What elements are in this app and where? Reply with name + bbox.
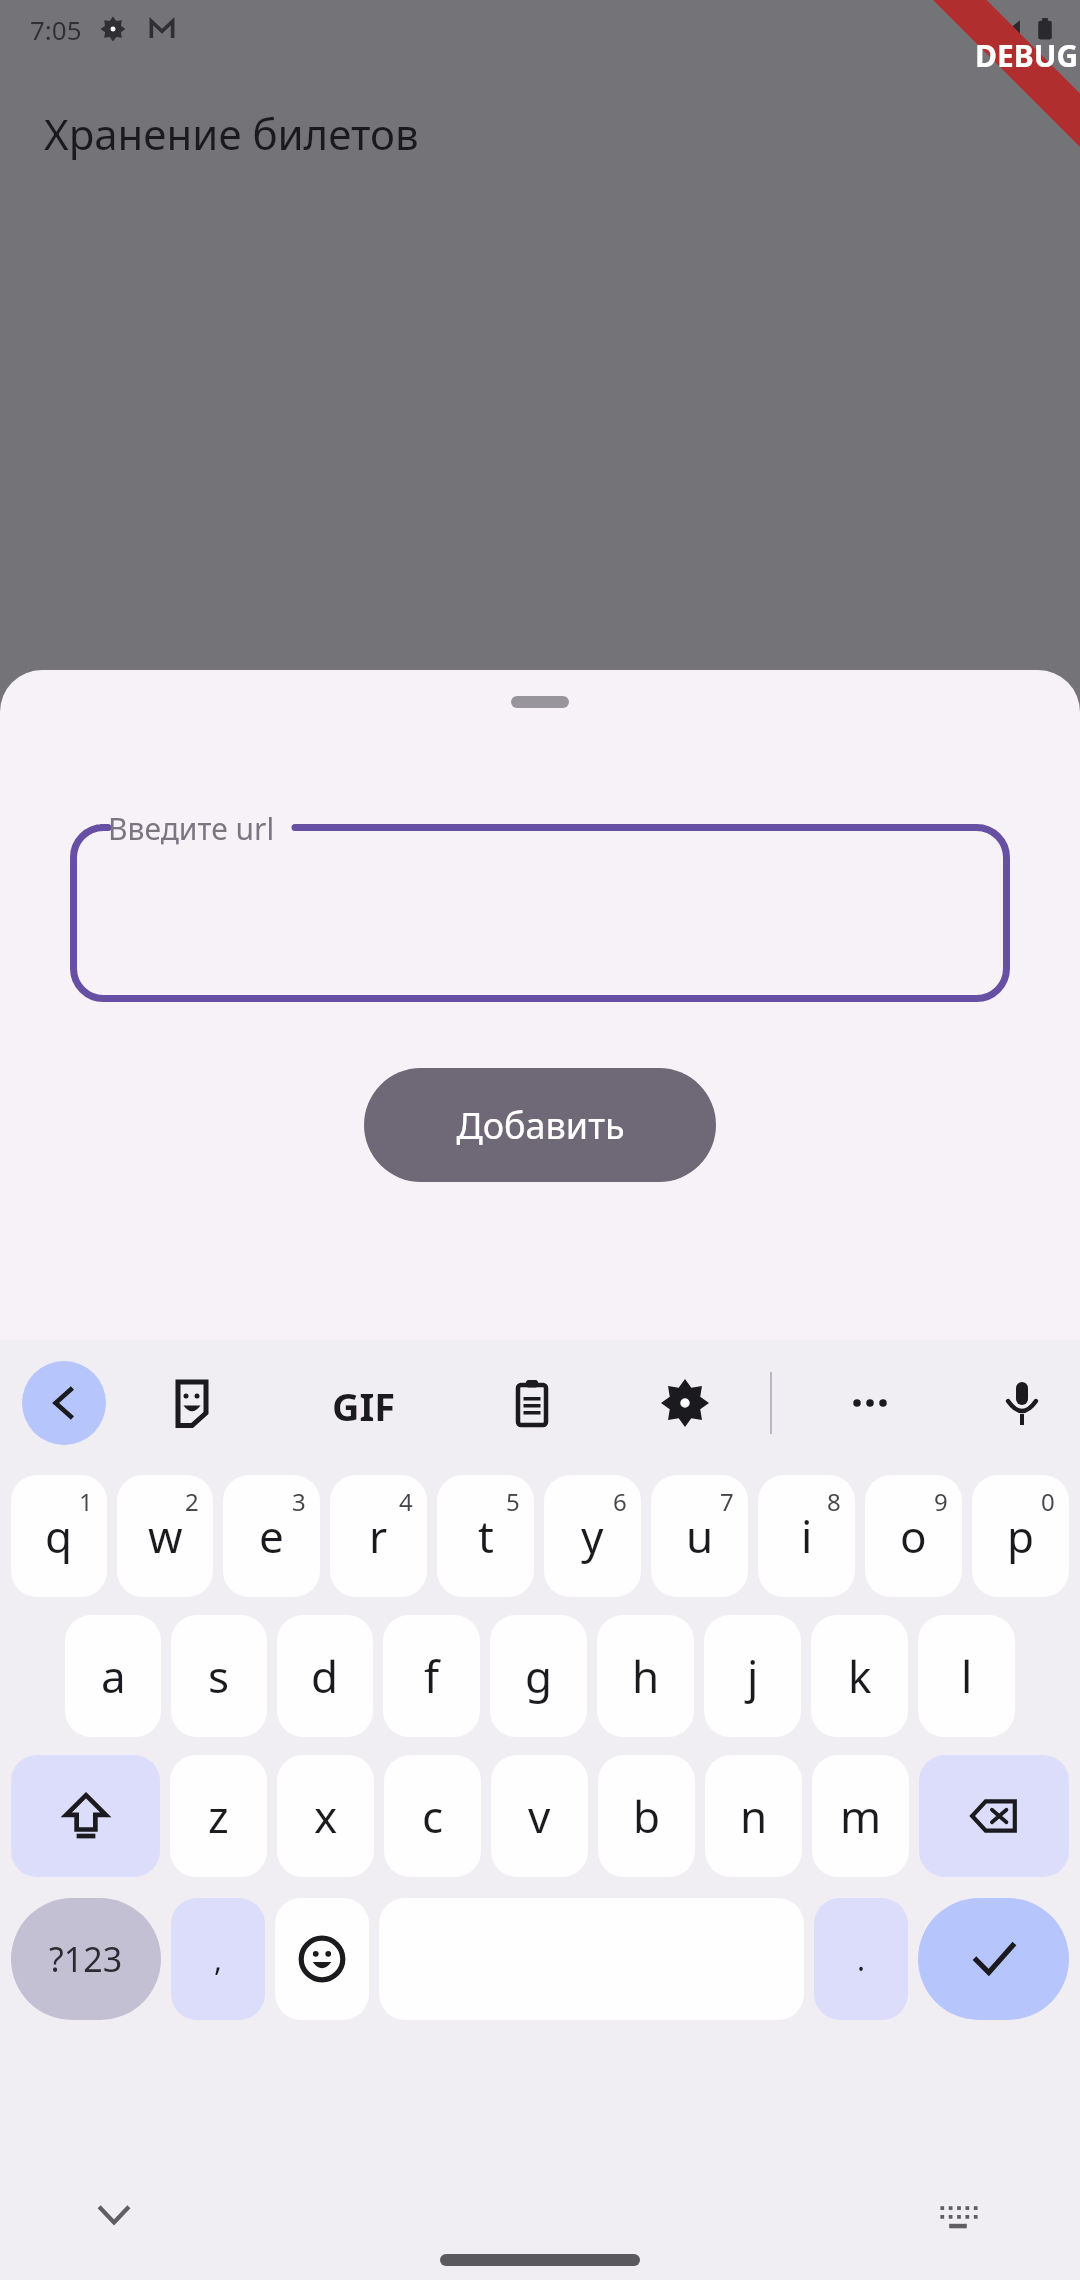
staticText: 0 <box>1041 1485 1055 1518</box>
button[interactable]: Emoji <box>275 1898 369 2020</box>
button[interactable]: Clipboard <box>490 1361 574 1445</box>
staticText: 4 <box>399 1485 413 1518</box>
staticText: e <box>259 1506 284 1566</box>
button[interactable]: t <box>437 1475 534 1597</box>
button[interactable]: Backspace <box>919 1755 1069 1877</box>
button[interactable]: l <box>918 1615 1015 1737</box>
staticText: m <box>840 1786 882 1846</box>
button[interactable]: a <box>65 1615 161 1737</box>
staticText: GIF <box>332 1380 396 1432</box>
button[interactable]: Hide keyboard <box>86 2187 142 2243</box>
button[interactable]: ?123 <box>11 1898 161 2020</box>
staticText: 5 <box>506 1485 520 1518</box>
staticText: g <box>525 1646 553 1706</box>
button[interactable]: Settings <box>643 1361 727 1445</box>
staticText: j <box>747 1646 759 1706</box>
button[interactable]: Shift <box>11 1755 160 1877</box>
button[interactable]: , <box>171 1898 265 2020</box>
button[interactable]: . <box>814 1898 908 2020</box>
staticText: 3 <box>292 1485 306 1518</box>
staticText: Введите url <box>108 808 275 849</box>
button[interactable]: u <box>651 1475 748 1597</box>
staticText: 7:05 <box>30 12 82 47</box>
staticText: 1 <box>79 1485 93 1518</box>
button[interactable]: k <box>811 1615 908 1737</box>
staticText: Добавить <box>456 1101 625 1150</box>
button[interactable]: f <box>383 1615 480 1737</box>
button[interactable]: p <box>972 1475 1069 1597</box>
button[interactable]: x <box>277 1755 374 1877</box>
staticText: n <box>740 1786 768 1846</box>
button[interactable]: Back <box>22 1361 106 1445</box>
button[interactable]: Switch keyboard <box>930 2187 986 2243</box>
button[interactable]: Enter <box>918 1898 1069 2020</box>
staticText: 8 <box>827 1485 841 1518</box>
button[interactable]: y <box>544 1475 641 1597</box>
staticText: h <box>632 1646 660 1706</box>
button[interactable]: h <box>597 1615 694 1737</box>
button[interactable]: GIF <box>332 1380 396 1432</box>
staticText: 6 <box>613 1485 627 1518</box>
staticText: t <box>478 1506 494 1566</box>
button[interactable]: Добавить <box>364 1068 716 1182</box>
staticText: Хранение билетов <box>44 105 419 162</box>
staticText: i <box>801 1506 813 1566</box>
button[interactable]: v <box>491 1755 588 1877</box>
staticText: 7 <box>720 1485 734 1518</box>
staticText: w <box>148 1506 183 1566</box>
staticText: o <box>900 1506 927 1566</box>
staticText: z <box>208 1786 229 1846</box>
staticText: u <box>686 1506 714 1566</box>
button[interactable]: b <box>598 1755 695 1877</box>
button[interactable]: m <box>812 1755 909 1877</box>
staticText: v <box>528 1786 551 1846</box>
button[interactable]: Stickers <box>150 1361 234 1445</box>
staticText: 2 <box>185 1485 199 1518</box>
staticText: . <box>857 1939 866 1980</box>
staticText: x <box>314 1786 338 1846</box>
button[interactable]: n <box>705 1755 802 1877</box>
button[interactable]: d <box>277 1615 373 1737</box>
staticText: y <box>581 1506 604 1566</box>
button[interactable]: j <box>704 1615 801 1737</box>
button[interactable]: z <box>170 1755 267 1877</box>
button[interactable]: o <box>865 1475 962 1597</box>
staticText: b <box>633 1786 661 1846</box>
button[interactable]: e <box>223 1475 320 1597</box>
staticText: f <box>424 1646 440 1706</box>
button[interactable]: s <box>171 1615 267 1737</box>
button[interactable]: More options <box>828 1361 912 1445</box>
staticText: l <box>961 1646 973 1706</box>
staticText: c <box>422 1786 444 1846</box>
staticText: r <box>369 1506 388 1566</box>
staticText: k <box>848 1646 872 1706</box>
staticText: d <box>311 1646 339 1706</box>
staticText: ?123 <box>49 1936 123 1982</box>
staticText: , <box>214 1939 223 1980</box>
staticText: s <box>208 1646 230 1706</box>
button[interactable]: i <box>758 1475 855 1597</box>
staticText: q <box>45 1506 73 1566</box>
staticText: p <box>1007 1506 1035 1566</box>
button[interactable]: c <box>384 1755 481 1877</box>
staticText: a <box>101 1646 126 1706</box>
button[interactable]: GIF <box>302 1361 386 1445</box>
staticText: 9 <box>934 1485 948 1518</box>
button[interactable]: q <box>11 1475 107 1597</box>
staticText: DEBUG <box>975 35 1079 76</box>
button[interactable]: Voice input <box>980 1361 1064 1445</box>
button[interactable]: g <box>490 1615 587 1737</box>
button[interactable]: w <box>117 1475 213 1597</box>
button[interactable]: r <box>330 1475 427 1597</box>
button[interactable]: Введите url <box>70 824 1010 1002</box>
